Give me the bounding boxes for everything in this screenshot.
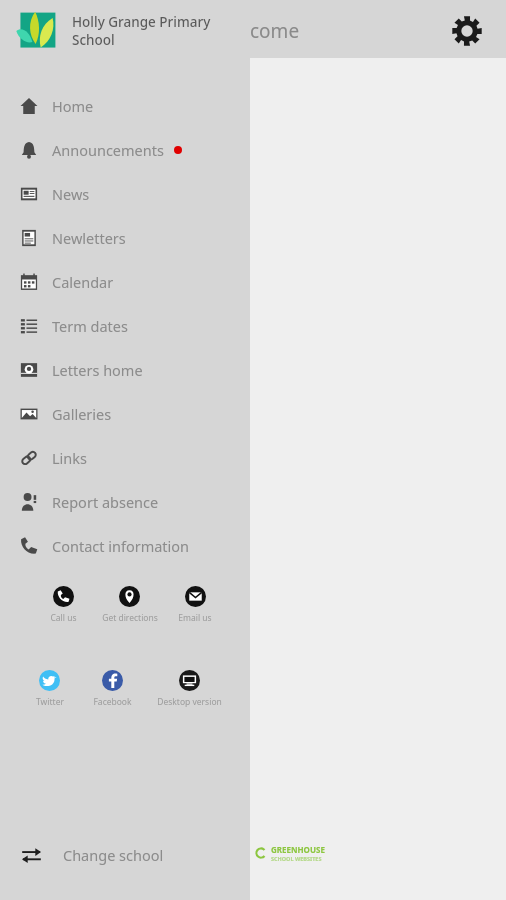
button[interactable]: Email us <box>166 584 224 626</box>
staticText: Twitter <box>36 696 64 708</box>
button[interactable]: Announcements <box>0 128 250 172</box>
staticText: Announcements <box>52 140 164 160</box>
staticText: News <box>52 184 90 204</box>
button[interactable]: Galleries <box>0 392 250 436</box>
staticText: Email us <box>178 612 212 624</box>
staticText: Galleries <box>52 404 112 424</box>
button[interactable]: Term dates <box>0 304 250 348</box>
staticText: come <box>250 18 300 44</box>
staticText: Newletters <box>52 228 126 248</box>
staticText: Home <box>52 96 94 116</box>
staticText: Facebook <box>93 696 132 708</box>
staticText: Desktop version <box>157 696 222 708</box>
button[interactable]: Settings <box>446 10 488 52</box>
button[interactable]: Twitter <box>18 668 81 710</box>
staticText: Report absence <box>52 492 159 512</box>
button[interactable]: Calendar <box>0 260 250 304</box>
staticText: Links <box>52 448 87 468</box>
button[interactable]: Change school <box>0 826 250 884</box>
staticText: Get directions <box>102 612 158 624</box>
button[interactable]: Get directions <box>93 584 166 626</box>
button[interactable]: Report absence <box>0 480 250 524</box>
button[interactable]: Contact information <box>0 524 250 568</box>
button[interactable]: Facebook <box>81 668 143 710</box>
button[interactable]: Call us <box>34 584 93 626</box>
staticText: Call us <box>50 612 77 624</box>
staticText: Letters home <box>52 360 143 380</box>
button[interactable]: Newletters <box>0 216 250 260</box>
staticText: Change school <box>63 845 164 865</box>
staticText: SCHOOL WEBSITES <box>271 855 322 862</box>
button[interactable]: News <box>0 172 250 216</box>
staticText: School <box>72 31 115 49</box>
button[interactable]: Home <box>0 84 250 128</box>
staticText: Contact information <box>52 536 190 556</box>
button[interactable]: Holly Grange Primary <box>0 0 250 62</box>
button[interactable]: Links <box>0 436 250 480</box>
button[interactable]: Desktop version <box>143 668 236 710</box>
button[interactable]: Letters home <box>0 348 250 392</box>
staticText: Holly Grange Primary <box>72 13 211 31</box>
staticText: Term dates <box>52 316 128 336</box>
staticText: GREENHOUSE <box>271 844 325 855</box>
staticText: Calendar <box>52 272 114 292</box>
